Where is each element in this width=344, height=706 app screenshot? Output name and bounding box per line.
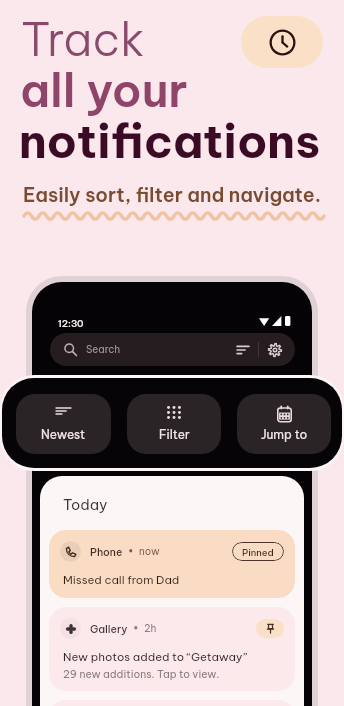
staticText: Easily sort, filter and navigate. — [23, 182, 321, 207]
staticText: 12:30 — [58, 317, 84, 329]
staticText: now — [139, 545, 160, 558]
staticText: • — [128, 545, 134, 558]
staticText: Filter — [159, 427, 190, 442]
button[interactable]: Pin notification — [256, 619, 284, 638]
staticText: Missed call from Dad — [63, 572, 180, 587]
button[interactable]: Jump to — [237, 394, 331, 454]
button[interactable]: Recent history — [241, 16, 323, 68]
button[interactable]: Pinned — [232, 542, 284, 561]
staticText: Newest — [41, 427, 86, 442]
button[interactable]: Newest — [16, 394, 111, 454]
staticText: all your — [20, 61, 188, 119]
staticText: Search — [86, 343, 121, 356]
staticText: Pinned — [242, 546, 274, 558]
staticText: Jump to — [261, 427, 308, 442]
staticText: Today — [63, 495, 108, 513]
button[interactable]: Gallery — [49, 607, 295, 691]
staticText: Gallery — [90, 622, 128, 635]
staticText: • — [133, 622, 139, 635]
button[interactable]: Mail — [49, 700, 295, 706]
staticText: Phone — [90, 545, 123, 558]
staticText: 29 new additions. Tap to view. — [63, 667, 220, 680]
button[interactable]: Phone — [49, 530, 295, 598]
button[interactable]: Search — [50, 333, 295, 366]
staticText: notifications — [19, 111, 321, 170]
button[interactable]: Filter — [127, 394, 221, 454]
staticText: Track — [21, 10, 145, 68]
staticText: New photos added to “Getaway” — [63, 649, 248, 664]
staticText: 2h — [144, 622, 157, 635]
